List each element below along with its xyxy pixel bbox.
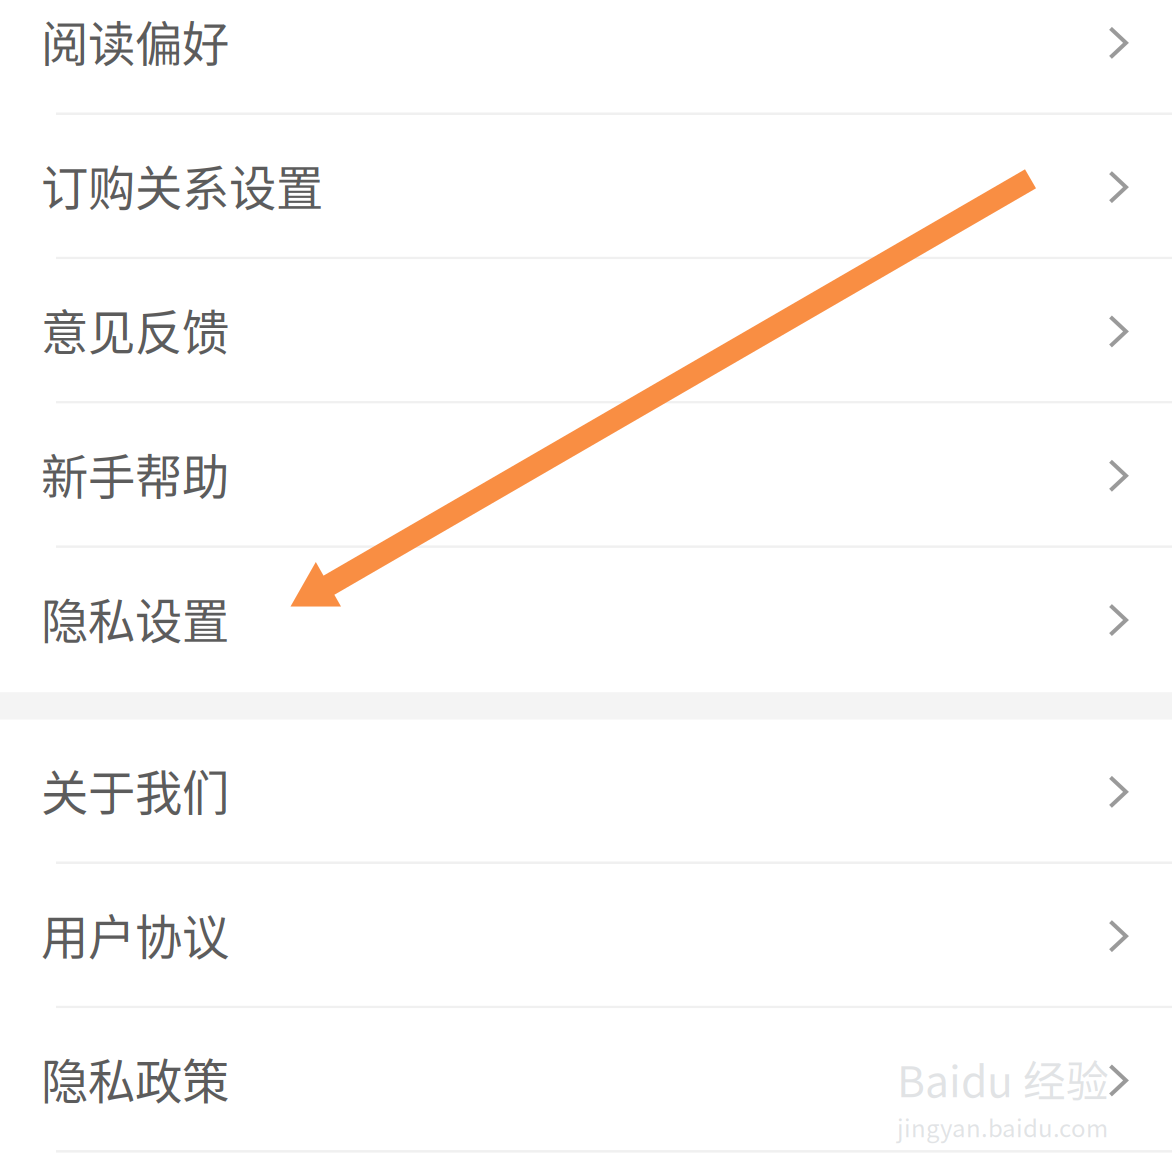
staticText: 关于我们 <box>41 756 229 824</box>
button[interactable]: 关于我们 <box>0 720 1172 864</box>
button[interactable]: 订购关系设置 <box>0 115 1172 259</box>
staticText: jingyan.baidu.com <box>897 1109 1108 1144</box>
staticText: 隐私设置 <box>41 584 229 652</box>
button[interactable]: 阅读偏好 <box>0 0 1172 115</box>
button[interactable]: 隐私设置 <box>0 548 1172 692</box>
staticText: 意见反馈 <box>41 295 229 364</box>
button[interactable]: 意见反馈 <box>0 259 1172 404</box>
staticText: 订购关系设置 <box>41 151 323 219</box>
staticText: 隐私政策 <box>41 1044 229 1113</box>
staticText: 阅读偏好 <box>41 7 229 75</box>
staticText: 用户协议 <box>41 900 229 968</box>
button[interactable]: 隐私政策 <box>0 1008 1172 1153</box>
button[interactable]: 用户协议 <box>0 864 1172 1008</box>
button[interactable]: 新手帮助 <box>0 404 1172 548</box>
staticText: 新手帮助 <box>41 439 229 508</box>
staticText: Baidu 经验 <box>897 1048 1109 1109</box>
